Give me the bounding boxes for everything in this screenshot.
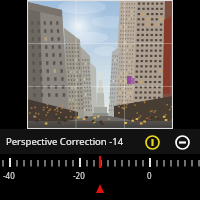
staticText: 0 bbox=[147, 170, 152, 181]
staticText: -20 bbox=[73, 170, 85, 181]
staticText: -40 bbox=[3, 170, 15, 181]
button[interactable]: Info bbox=[140, 130, 164, 154]
button[interactable]: -40 bbox=[0, 154, 200, 200]
staticText: Perspective Correction -14 bbox=[6, 135, 124, 148]
button[interactable]: Remove bbox=[170, 130, 194, 154]
